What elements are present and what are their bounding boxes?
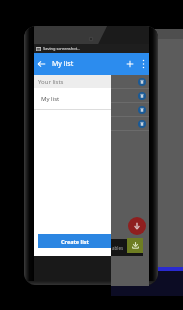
button[interactable]: Download [127,238,143,253]
button[interactable]: Save screenshot [128,217,146,235]
staticText: Saving screenshot... [43,46,81,51]
button[interactable]: Create list [38,234,111,248]
button[interactable]: More options [137,53,149,75]
staticText: My list [41,95,60,103]
staticText: Your lists [38,78,64,86]
button[interactable]: Add list [122,53,137,75]
staticText: Create list [61,238,89,245]
staticText: My list [52,59,74,69]
staticText: ables [112,245,124,251]
button[interactable]: Delete list [111,103,149,116]
button[interactable]: Back [34,53,49,75]
button[interactable]: Delete list [111,89,149,102]
button[interactable]: My list [34,88,149,109]
button[interactable]: Delete list [111,75,149,88]
button[interactable]: Delete list [111,117,149,130]
